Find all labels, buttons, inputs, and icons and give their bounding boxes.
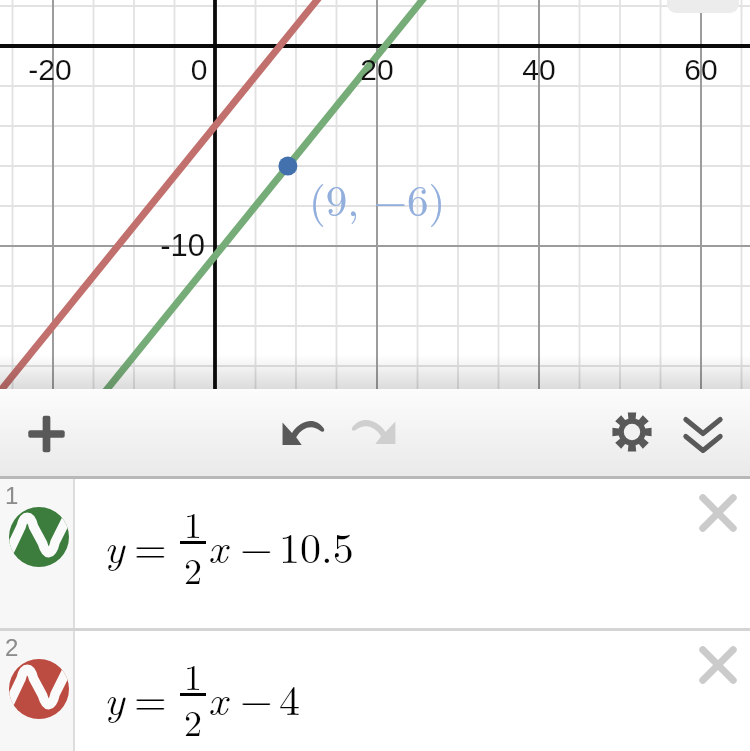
- staticText: 1: [5, 482, 19, 509]
- button[interactable]: Settings: [598, 389, 666, 479]
- staticText: -20: [0, 53, 100, 87]
- staticText: 4: [279, 668, 301, 728]
- staticText: −: [240, 516, 273, 576]
- staticText: 10.5: [279, 516, 354, 576]
- staticText: y: [104, 516, 125, 575]
- staticText: 1: [184, 649, 202, 700]
- staticText: 60: [651, 53, 750, 87]
- staticText: =: [134, 516, 167, 576]
- button[interactable]: Redo: [337, 389, 411, 479]
- button[interactable]: Delete expression: [686, 481, 750, 545]
- staticText: (9, −6): [309, 168, 446, 229]
- button[interactable]: Collapse list: [669, 389, 737, 479]
- staticText: 1: [184, 497, 202, 548]
- staticText: =: [134, 668, 167, 728]
- button[interactable]: 1: [0, 479, 750, 628]
- staticText: 2: [5, 634, 19, 661]
- button[interactable]: Add expression: [14, 389, 79, 479]
- staticText: 20: [327, 53, 427, 87]
- staticText: x: [208, 668, 228, 727]
- staticText: -10: [105, 228, 205, 263]
- button[interactable]: Undo: [267, 389, 339, 479]
- button[interactable]: Graph options: [667, 0, 739, 13]
- staticText: 2: [184, 695, 202, 746]
- button[interactable]: Delete expression: [686, 633, 750, 697]
- staticText: 40: [489, 53, 589, 87]
- staticText: 2: [184, 543, 202, 594]
- staticText: 0: [149, 53, 249, 87]
- staticText: y: [104, 668, 125, 727]
- staticText: x: [208, 516, 228, 575]
- button[interactable]: 2: [0, 631, 750, 751]
- staticText: −: [240, 668, 273, 728]
